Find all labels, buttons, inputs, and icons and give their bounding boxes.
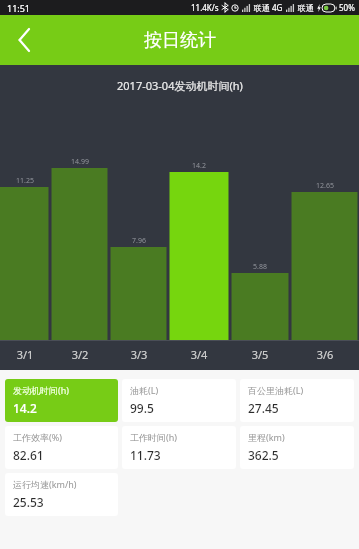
- staticText: 11.4K/s: [191, 2, 219, 13]
- staticText: 11.73: [130, 447, 161, 463]
- button[interactable]: 工作时间(h): [122, 426, 236, 469]
- staticText: 3/3: [114, 347, 164, 362]
- staticText: 油耗(L): [130, 384, 159, 396]
- button[interactable]: 发动机时间(h): [5, 379, 118, 422]
- staticText: 运行均速(km/h): [13, 478, 77, 490]
- staticText: 按日统计: [144, 29, 216, 52]
- staticText: 11.25: [0, 176, 50, 186]
- staticText: 5.88: [235, 262, 285, 272]
- staticText: 里程(km): [248, 431, 285, 443]
- staticText: 25.53: [13, 494, 44, 510]
- staticText: 工作效率(%): [13, 431, 62, 443]
- staticText: 4G: [272, 2, 283, 13]
- staticText: 50%: [339, 2, 355, 13]
- staticText: 99.5: [130, 400, 154, 416]
- staticText: 3/2: [55, 347, 105, 362]
- button[interactable]: 运行均速(km/h): [5, 473, 118, 516]
- staticText: 百公里油耗(L): [248, 384, 304, 396]
- button[interactable]: 油耗(L): [122, 379, 236, 422]
- staticText: 工作时间(h): [130, 431, 177, 443]
- staticText: 3/6: [300, 347, 350, 362]
- button[interactable]: 百公里油耗(L): [240, 379, 354, 422]
- staticText: 82.61: [13, 447, 44, 463]
- staticText: 362.5: [248, 447, 279, 463]
- staticText: 14.2: [174, 161, 224, 171]
- button[interactable]: 工作效率(%): [5, 426, 118, 469]
- staticText: 12.65: [300, 181, 350, 191]
- staticText: 3/1: [0, 347, 50, 362]
- staticText: 2017-03-04发动机时间(h): [117, 78, 243, 93]
- staticText: 联通: [298, 3, 314, 13]
- staticText: 11:51: [7, 2, 31, 14]
- staticText: 14.2: [13, 400, 37, 416]
- staticText: 3/5: [235, 347, 285, 362]
- staticText: 14.99: [55, 157, 105, 167]
- button[interactable]: Back: [0, 16, 48, 64]
- staticText: 27.45: [248, 400, 279, 416]
- staticText: 发动机时间(h): [13, 384, 69, 396]
- staticText: 7.96: [114, 236, 164, 246]
- button[interactable]: 里程(km): [240, 426, 354, 469]
- staticText: 联通: [254, 3, 270, 13]
- staticText: 3/4: [174, 347, 224, 362]
